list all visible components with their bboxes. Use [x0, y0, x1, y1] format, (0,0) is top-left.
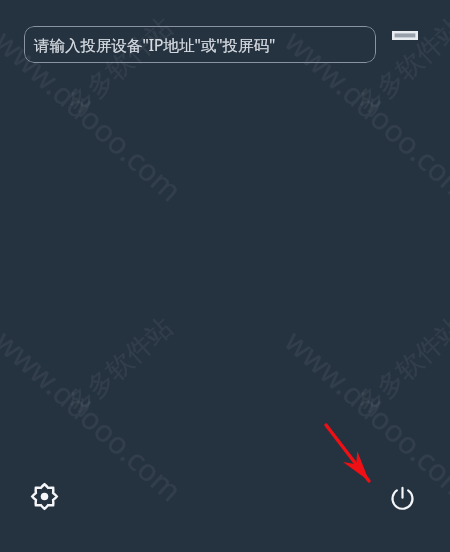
button[interactable]: Power	[384, 479, 420, 515]
staticText: 多多软件站	[351, 311, 450, 422]
button[interactable]: Minimize	[384, 23, 426, 47]
staticText: www.ddooo.com	[0, 321, 191, 510]
button[interactable]: Settings	[26, 478, 62, 514]
staticText: www.ddooo.com	[0, 21, 191, 210]
staticText: www.ddooo.com	[277, 321, 450, 510]
staticText: 多多软件站	[61, 11, 179, 122]
staticText: 请输入投屏设备"IP地址"或"投屏码"	[34, 34, 276, 55]
button[interactable]: 请输入投屏设备"IP地址"或"投屏码"	[24, 26, 376, 63]
staticText: 多多软件站	[61, 311, 179, 422]
staticText: www.ddooo.com	[277, 21, 450, 210]
staticText: 多多软件站	[351, 11, 450, 122]
